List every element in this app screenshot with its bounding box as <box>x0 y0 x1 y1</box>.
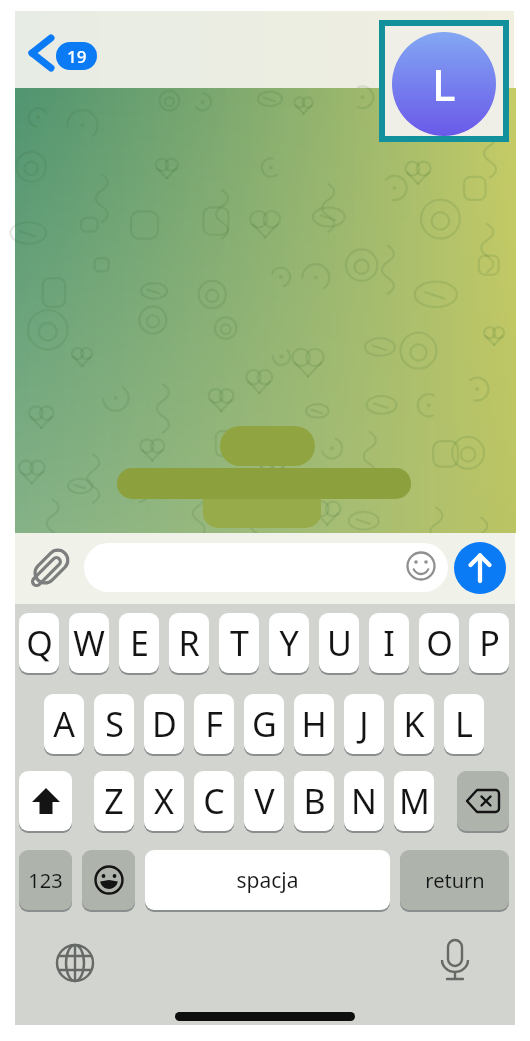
staticText: K <box>403 701 425 747</box>
button[interactable]: F <box>194 694 234 756</box>
button[interactable]: P <box>469 613 509 675</box>
button[interactable]: X <box>144 771 184 833</box>
staticText: L <box>432 54 456 114</box>
button[interactable] <box>457 771 509 833</box>
button[interactable]: S <box>94 694 134 756</box>
staticText: J <box>359 701 369 747</box>
button[interactable]: L <box>444 694 484 756</box>
button[interactable] <box>454 542 506 594</box>
staticText: Y <box>279 620 299 666</box>
staticText: F <box>205 701 223 747</box>
staticText: N <box>351 778 377 824</box>
button[interactable]: Z <box>94 771 134 833</box>
button[interactable]: E <box>119 613 159 675</box>
button[interactable] <box>26 544 74 592</box>
button[interactable] <box>27 34 55 72</box>
staticText: Z <box>104 778 124 824</box>
staticText: X <box>154 778 174 824</box>
button[interactable]: A <box>44 694 84 756</box>
button[interactable]: R <box>169 613 209 675</box>
button[interactable]: Y <box>269 613 309 675</box>
button[interactable]: 19 <box>56 42 97 70</box>
staticText: C <box>203 778 225 824</box>
staticText: 123 <box>28 867 63 894</box>
button[interactable] <box>84 543 448 592</box>
button[interactable]: G <box>244 694 284 756</box>
staticText: 19 <box>67 45 87 68</box>
staticText: A <box>53 701 75 747</box>
staticText: L <box>455 701 473 747</box>
button[interactable]: U <box>319 613 359 675</box>
staticText: G <box>252 701 277 747</box>
staticText: T <box>230 620 249 666</box>
button[interactable]: T <box>219 613 259 675</box>
button[interactable] <box>19 771 72 833</box>
button[interactable]: C <box>194 771 234 833</box>
button[interactable]: H <box>294 694 334 756</box>
button[interactable]: 123 <box>19 850 72 912</box>
button[interactable]: N <box>344 771 384 833</box>
staticText: P <box>479 620 500 666</box>
staticText: H <box>301 701 327 747</box>
button[interactable]: D <box>144 694 184 756</box>
button[interactable]: J <box>344 694 384 756</box>
staticText: return <box>425 867 485 894</box>
staticText: spacja <box>236 866 299 895</box>
button[interactable]: Q <box>19 613 59 675</box>
staticText: V <box>254 778 275 824</box>
staticText: R <box>178 620 200 666</box>
button[interactable]: spacja <box>145 850 390 912</box>
button[interactable]: M <box>394 771 434 833</box>
staticText: W <box>73 620 105 666</box>
button[interactable] <box>438 938 472 984</box>
button[interactable]: K <box>394 694 434 756</box>
button[interactable]: I <box>369 613 409 675</box>
staticText: I <box>383 620 395 666</box>
button[interactable]: L <box>392 32 496 136</box>
button[interactable] <box>82 850 135 912</box>
button[interactable]: W <box>69 613 109 675</box>
button[interactable]: O <box>419 613 459 675</box>
staticText: E <box>130 620 149 666</box>
staticText: M <box>399 778 430 824</box>
staticText: B <box>303 778 326 824</box>
staticText: Q <box>26 620 53 666</box>
staticText: U <box>327 620 352 666</box>
button[interactable]: return <box>400 850 509 912</box>
button[interactable]: B <box>294 771 334 833</box>
button[interactable] <box>55 943 95 983</box>
staticText: S <box>105 701 124 747</box>
staticText: O <box>426 620 453 666</box>
staticText: D <box>152 701 177 747</box>
button[interactable]: V <box>244 771 284 833</box>
